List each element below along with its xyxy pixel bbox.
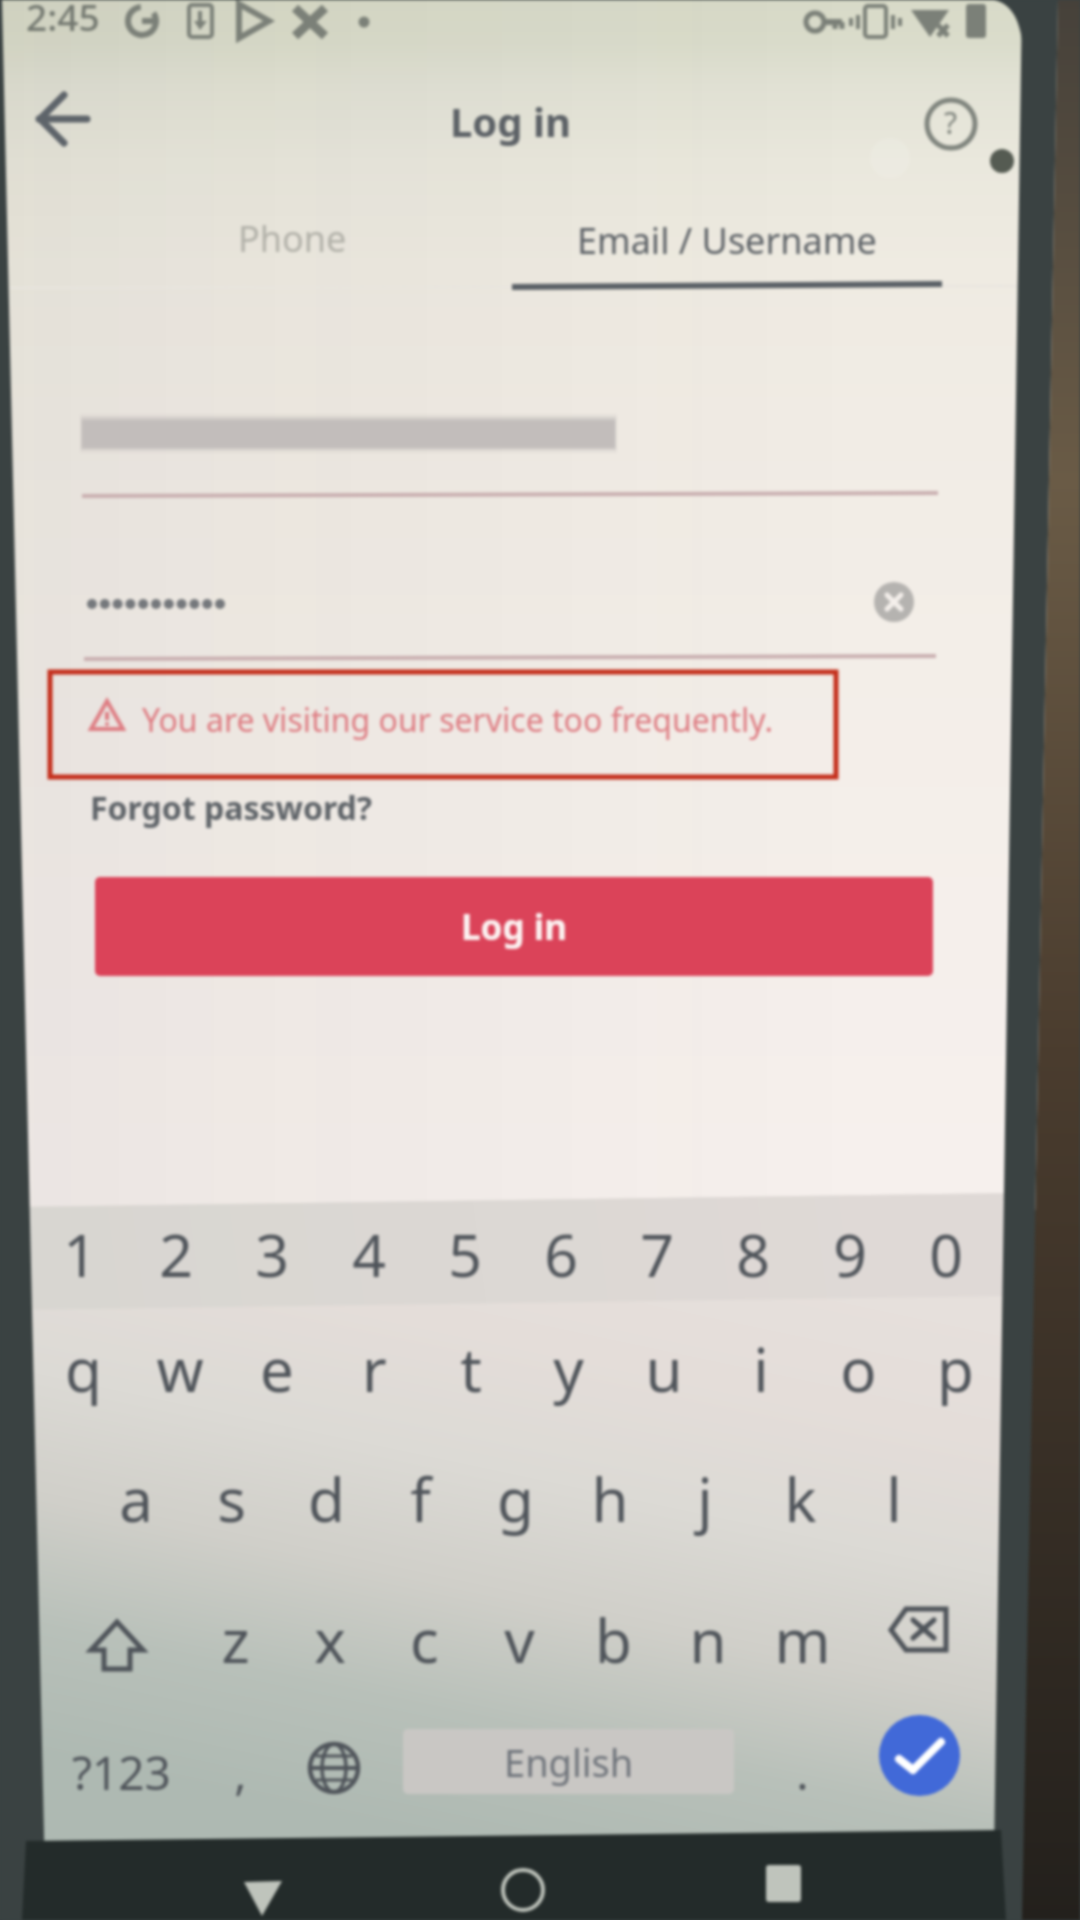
staticText: English <box>504 1736 634 1788</box>
button[interactable]: Help <box>917 90 985 158</box>
button[interactable]: x <box>282 1592 378 1688</box>
button[interactable]: . <box>754 1724 850 1820</box>
button[interactable]: t <box>423 1321 519 1417</box>
button[interactable]: j <box>657 1451 753 1547</box>
staticText: Log in <box>450 94 571 148</box>
button[interactable]: w <box>132 1321 228 1417</box>
staticText: w <box>156 1328 204 1410</box>
button[interactable]: 1 <box>32 1206 128 1302</box>
button[interactable]: g <box>467 1451 563 1547</box>
button[interactable]: Forgot password? <box>90 782 490 834</box>
button[interactable]: m <box>754 1592 850 1688</box>
staticText: 4 <box>352 1214 386 1294</box>
staticText: a <box>119 1458 153 1540</box>
button[interactable]: Back <box>22 82 104 164</box>
button[interactable]: Backspace <box>880 1598 962 1680</box>
button[interactable]: Phone <box>82 192 502 284</box>
staticText: r <box>362 1328 387 1410</box>
staticText: d <box>308 1458 345 1540</box>
staticText: z <box>221 1599 250 1681</box>
button[interactable]: u <box>616 1321 712 1417</box>
button[interactable]: b <box>565 1592 661 1688</box>
staticText: f <box>410 1458 431 1540</box>
button[interactable]: r <box>326 1321 422 1417</box>
button[interactable]: ?123 <box>56 1734 186 1810</box>
staticText: q <box>65 1328 102 1410</box>
staticText: i <box>753 1328 769 1410</box>
button[interactable]: , <box>192 1724 288 1820</box>
staticText: h <box>591 1458 629 1540</box>
staticText: g <box>497 1458 534 1540</box>
staticText: x <box>314 1599 346 1681</box>
button[interactable]: 0 <box>898 1206 994 1302</box>
button[interactable]: English <box>403 1729 734 1794</box>
button[interactable]: 7 <box>609 1206 705 1302</box>
staticText: s <box>217 1458 246 1540</box>
button[interactable]: v <box>471 1592 567 1688</box>
staticText: 9 <box>833 1214 867 1294</box>
button[interactable]: a <box>88 1451 184 1547</box>
staticText: Log in <box>461 903 567 951</box>
staticText: 6 <box>544 1214 578 1294</box>
staticText: . <box>796 1741 809 1804</box>
button[interactable]: d <box>278 1451 374 1547</box>
staticText: n <box>689 1599 727 1681</box>
button[interactable]: n <box>660 1592 756 1688</box>
button[interactable]: o <box>810 1321 906 1417</box>
button[interactable]: Email / Username <box>512 194 942 286</box>
staticText: v <box>504 1599 535 1681</box>
button[interactable]: Enter <box>879 1715 960 1796</box>
staticText: 2:45 <box>26 0 100 41</box>
button[interactable]: 3 <box>224 1206 320 1302</box>
button[interactable]: Clear password <box>864 572 924 632</box>
staticText: u <box>645 1328 683 1410</box>
staticText: 2 <box>159 1214 193 1294</box>
button[interactable]: Log in <box>95 877 933 976</box>
button[interactable]: i <box>713 1321 809 1417</box>
staticText: m <box>774 1599 831 1681</box>
button[interactable]: 5 <box>417 1206 513 1302</box>
staticText: 7 <box>640 1214 674 1294</box>
staticText: Forgot password? <box>90 786 373 830</box>
button[interactable]: Change keyboard language <box>308 1742 360 1794</box>
staticText: p <box>937 1328 974 1410</box>
staticText: c <box>410 1599 439 1681</box>
button[interactable]: k <box>752 1451 848 1547</box>
staticText: Phone <box>238 214 347 263</box>
staticText: , <box>234 1741 247 1804</box>
button[interactable]: p <box>907 1321 1003 1417</box>
button[interactable]: 6 <box>513 1206 609 1302</box>
button[interactable]: l <box>846 1451 942 1547</box>
staticText: ? <box>944 102 958 143</box>
staticText: 3 <box>255 1214 289 1294</box>
staticText: You are visiting our service too frequen… <box>142 698 773 742</box>
button[interactable]: c <box>376 1592 472 1688</box>
button[interactable]: z <box>187 1592 283 1688</box>
button[interactable]: y <box>520 1321 616 1417</box>
staticText: 0 <box>929 1214 963 1294</box>
staticText: k <box>784 1458 817 1540</box>
staticText: Email / Username <box>577 216 877 265</box>
staticText: 1 <box>63 1214 97 1294</box>
staticText: l <box>886 1458 902 1540</box>
staticText: j <box>697 1458 713 1540</box>
staticText: b <box>595 1599 632 1681</box>
staticText: ?123 <box>72 1741 171 1804</box>
button[interactable]: 4 <box>321 1206 417 1302</box>
staticText: o <box>840 1328 877 1410</box>
button[interactable]: e <box>229 1321 325 1417</box>
button[interactable]: f <box>372 1451 468 1547</box>
button[interactable]: h <box>562 1451 658 1547</box>
staticText: 8 <box>736 1214 770 1294</box>
button[interactable]: 2 <box>128 1206 224 1302</box>
button[interactable]: q <box>35 1321 131 1417</box>
staticText: 5 <box>448 1214 482 1294</box>
button[interactable]: Shift <box>69 1600 165 1696</box>
staticText: t <box>460 1328 482 1410</box>
button[interactable]: s <box>183 1451 279 1547</box>
staticText: e <box>260 1328 294 1410</box>
button[interactable]: 9 <box>802 1206 898 1302</box>
button[interactable]: 8 <box>705 1206 801 1302</box>
staticText: y <box>553 1328 584 1410</box>
